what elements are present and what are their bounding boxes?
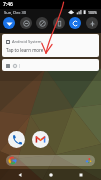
button[interactable]: Quick setting 5	[69, 17, 81, 29]
button[interactable]: Android System	[2, 34, 99, 57]
button[interactable]: Phone	[8, 131, 25, 148]
staticText: 100%	[88, 10, 97, 15]
button[interactable]: Back	[10, 169, 30, 180]
button[interactable]: Recents	[71, 169, 91, 180]
staticText: Tap to learn more	[6, 47, 44, 53]
button[interactable]: Manage notifications	[5, 63, 10, 68]
button[interactable]: Quick setting 4	[53, 17, 65, 29]
button[interactable]: Google Assistant	[6, 155, 95, 166]
staticText: 7:46	[3, 1, 13, 8]
button[interactable]: Home	[41, 169, 61, 180]
button[interactable]: Quick setting 3	[36, 17, 48, 29]
button[interactable]: Quick setting 1	[3, 17, 15, 29]
button[interactable]: Quick setting 6	[86, 17, 98, 29]
button[interactable]: Gmail	[32, 131, 49, 148]
staticText: Android System	[12, 39, 42, 44]
other: Google Assistant	[85, 157, 92, 164]
button[interactable]: Settings	[12, 63, 17, 68]
staticText: Sun, Dec 30	[4, 10, 26, 15]
button[interactable]: Quick setting 2	[20, 17, 32, 29]
